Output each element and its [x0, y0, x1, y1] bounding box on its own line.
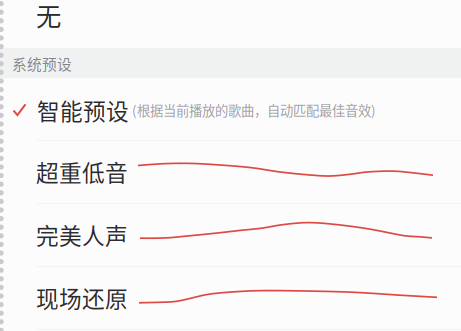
button[interactable]: 现场还原 [0, 266, 461, 329]
staticText: (根据当前播放的歌曲，自动匹配最佳音效) [132, 100, 376, 120]
button[interactable]: 超重低音 [0, 140, 461, 203]
staticText: 现场还原 [36, 281, 128, 314]
staticText: 系统预设 [12, 53, 72, 74]
button[interactable]: 完美人声 [0, 203, 461, 266]
button[interactable]: 智能预设 [0, 80, 461, 140]
staticText: 超重低音 [36, 155, 128, 188]
staticText: 无 [36, 0, 61, 33]
button[interactable]: 无 [0, 0, 166, 38]
staticText: 完美人声 [36, 218, 128, 251]
staticText: 智能预设 [37, 94, 129, 126]
